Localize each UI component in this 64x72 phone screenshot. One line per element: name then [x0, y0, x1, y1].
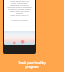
staticText: Continue reading	[4, 19, 35, 22]
staticText: Lorem ipsum dolor sit amet, consectetur …	[7, 0, 32, 14]
staticText: Read more about it	[4, 14, 35, 17]
staticText: Track your healthy progress	[18, 61, 46, 68]
button[interactable]: Track your healthy progress	[0, 61, 64, 68]
